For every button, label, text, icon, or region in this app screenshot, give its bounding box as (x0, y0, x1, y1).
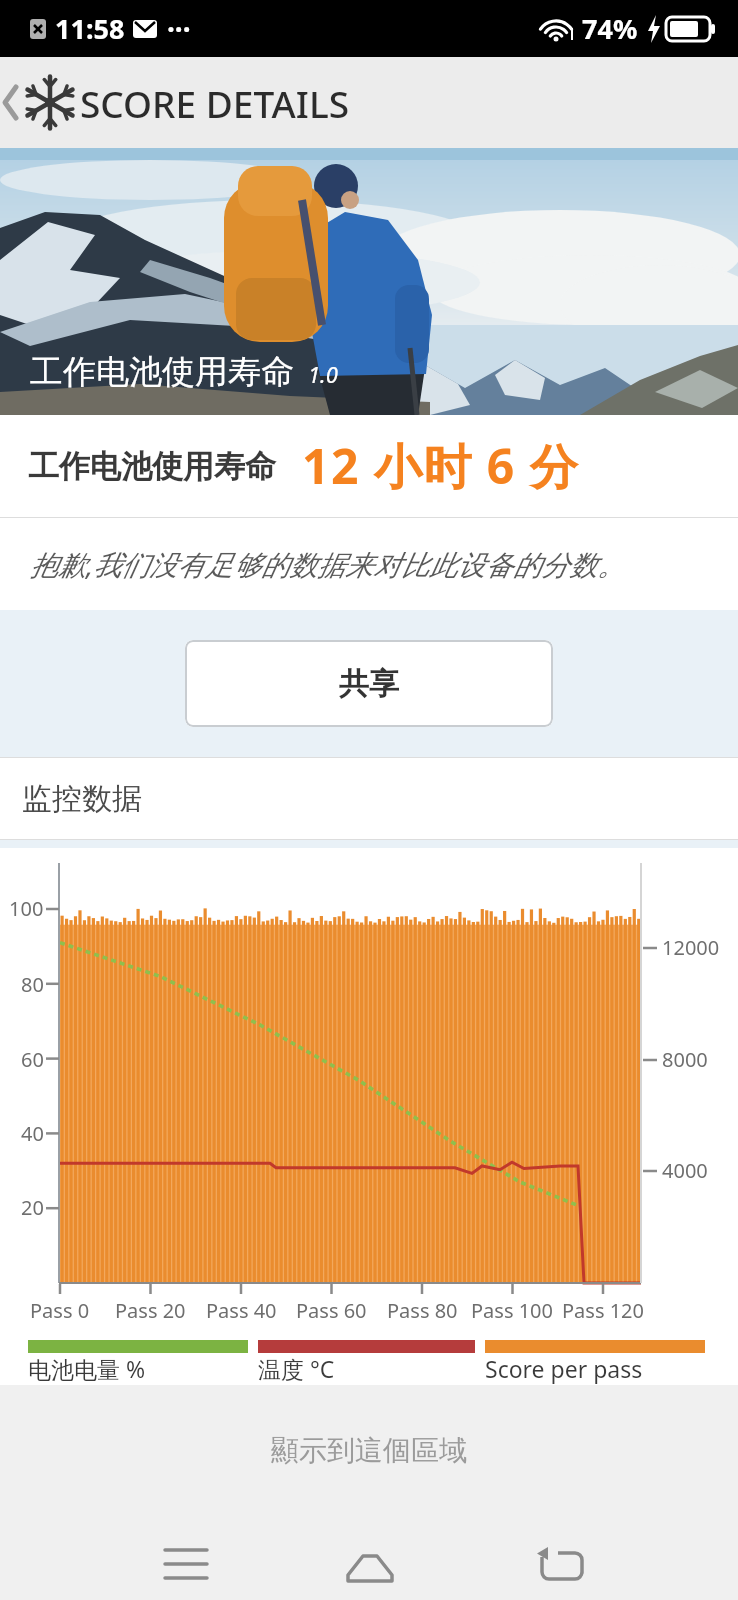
staticText: 20 (21, 1194, 44, 1221)
staticText: 顯示到這個區域 (271, 1433, 467, 1468)
staticText: 12 小时 6 分 (302, 433, 580, 499)
staticText: Pass 80 (387, 1297, 458, 1324)
staticText: 温度 °C (258, 1353, 335, 1384)
staticText: 80 (21, 971, 44, 998)
staticText: 工作电池使用寿命 (28, 447, 276, 486)
staticText: 40 (21, 1120, 44, 1147)
staticText: 100 (9, 895, 44, 922)
staticText: 8000 (662, 1046, 708, 1073)
staticText: Pass 60 (296, 1297, 367, 1324)
staticText: 工作电池使用寿命 (30, 351, 294, 393)
staticText: Pass 0 (30, 1297, 90, 1324)
staticText: Pass 40 (206, 1297, 277, 1324)
staticText: Score per pass (485, 1353, 643, 1384)
staticText: SCORE DETAILS (80, 78, 350, 128)
staticText: 共享 (339, 665, 399, 703)
staticText: Pass 20 (115, 1297, 186, 1324)
staticText: Pass 120 (562, 1297, 644, 1324)
staticText: 抱歉,我们没有足够的数据来对比此设备的分数。 (30, 545, 626, 583)
button[interactable]: 共享 (185, 640, 553, 727)
staticText: 12000 (662, 934, 720, 961)
staticText: 电池电量 % (28, 1353, 146, 1384)
staticText: ··· (167, 10, 191, 48)
staticText: Pass 100 (471, 1297, 553, 1324)
staticText: 74% (582, 10, 638, 47)
staticText: 60 (21, 1046, 44, 1073)
staticText: 1.0 (308, 359, 338, 389)
staticText: 11:58 (55, 10, 125, 47)
staticText: 监控数据 (22, 780, 142, 818)
button[interactable] (158, 1543, 214, 1587)
button[interactable] (0, 57, 80, 148)
button[interactable] (534, 1543, 590, 1587)
staticText: 4000 (662, 1157, 708, 1184)
button[interactable] (342, 1543, 398, 1587)
